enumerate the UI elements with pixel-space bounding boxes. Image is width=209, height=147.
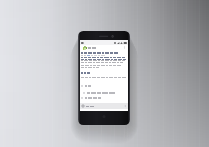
button[interactable] (80, 103, 128, 109)
button[interactable]: More options (122, 45, 126, 50)
button[interactable] (81, 96, 101, 99)
button[interactable] (81, 84, 91, 87)
button[interactable] (83, 91, 115, 94)
